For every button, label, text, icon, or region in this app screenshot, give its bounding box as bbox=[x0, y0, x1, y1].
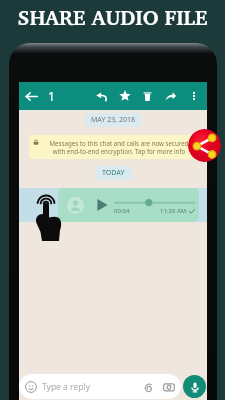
button[interactable]: Delete bbox=[136, 82, 159, 110]
button[interactable]: Forward bbox=[159, 82, 182, 110]
button[interactable]: Share bbox=[188, 129, 221, 162]
button[interactable]: Record voice message bbox=[183, 375, 206, 398]
staticText: 00:04 bbox=[114, 207, 130, 215]
button[interactable]: Reply bbox=[90, 82, 113, 110]
staticText: 1 bbox=[48, 88, 55, 104]
button[interactable]: Star bbox=[113, 82, 136, 110]
button[interactable]: Camera bbox=[162, 380, 175, 393]
staticText: 11:26 AM bbox=[160, 207, 187, 215]
staticText: TODAY bbox=[102, 168, 125, 178]
button[interactable]: Type a reply bbox=[19, 374, 181, 399]
staticText: SHARE AUDIO FILE bbox=[17, 5, 208, 30]
button[interactable]: More options bbox=[182, 82, 205, 110]
button[interactable]: 00:04 bbox=[58, 188, 199, 222]
button[interactable]: Messages to this chat and calls are now … bbox=[29, 135, 200, 159]
button[interactable]: Attach file bbox=[141, 380, 154, 393]
button[interactable]: Back bbox=[19, 82, 59, 110]
other: Back bbox=[24, 89, 39, 104]
staticText: Messages to this chat and calls are now … bbox=[41, 139, 197, 155]
staticText: MAY 23, 2018 bbox=[91, 115, 135, 125]
staticText: Type a reply bbox=[42, 381, 90, 393]
